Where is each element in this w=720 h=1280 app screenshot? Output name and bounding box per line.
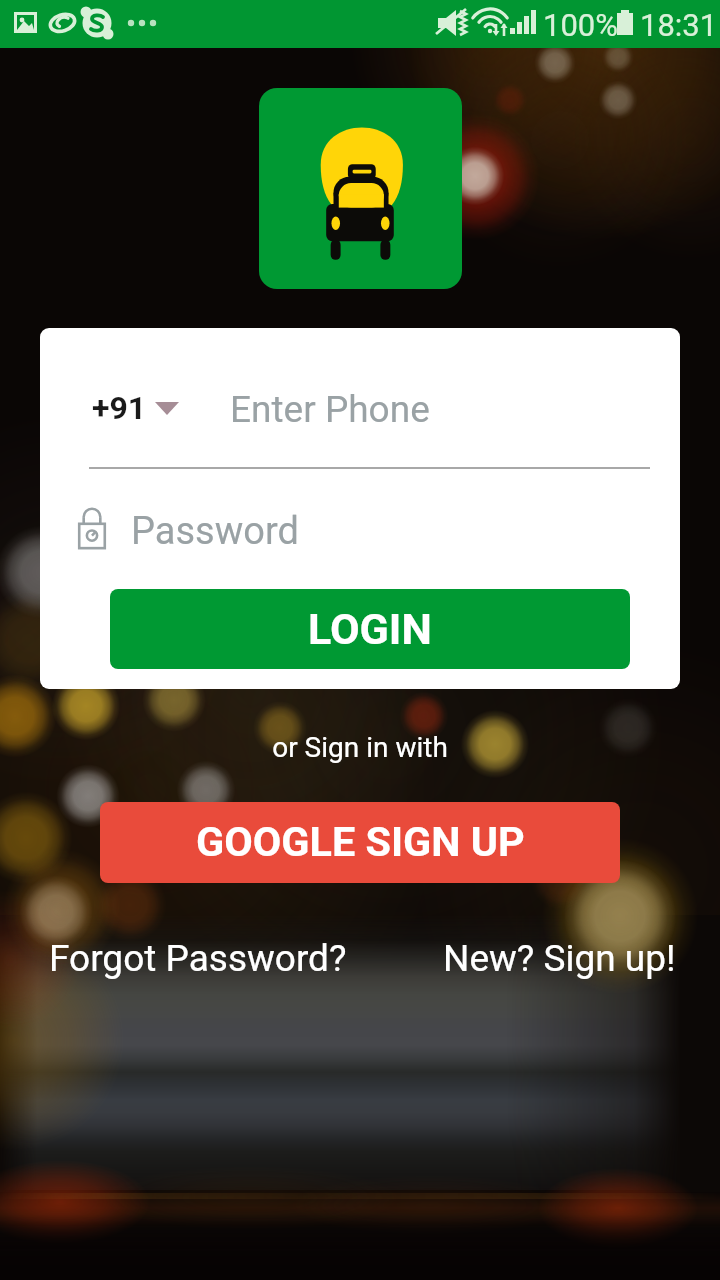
button[interactable]: LOGIN	[110, 589, 630, 669]
staticText: 100%	[543, 7, 618, 43]
button[interactable]: New? Sign up!	[443, 937, 676, 980]
staticText: Enter Phone	[230, 388, 430, 431]
staticText: GOOGLE SIGN UP	[196, 818, 525, 867]
button[interactable]: GOOGLE SIGN UP	[100, 802, 620, 883]
staticText: LOGIN	[308, 604, 432, 654]
button[interactable]: +91	[92, 389, 147, 427]
staticText: Password	[131, 509, 299, 554]
button[interactable]: Forgot Password?	[49, 937, 347, 980]
other: Select country code	[155, 402, 179, 415]
staticText: 18:31	[640, 7, 718, 43]
staticText: or Sign in with	[0, 731, 720, 764]
